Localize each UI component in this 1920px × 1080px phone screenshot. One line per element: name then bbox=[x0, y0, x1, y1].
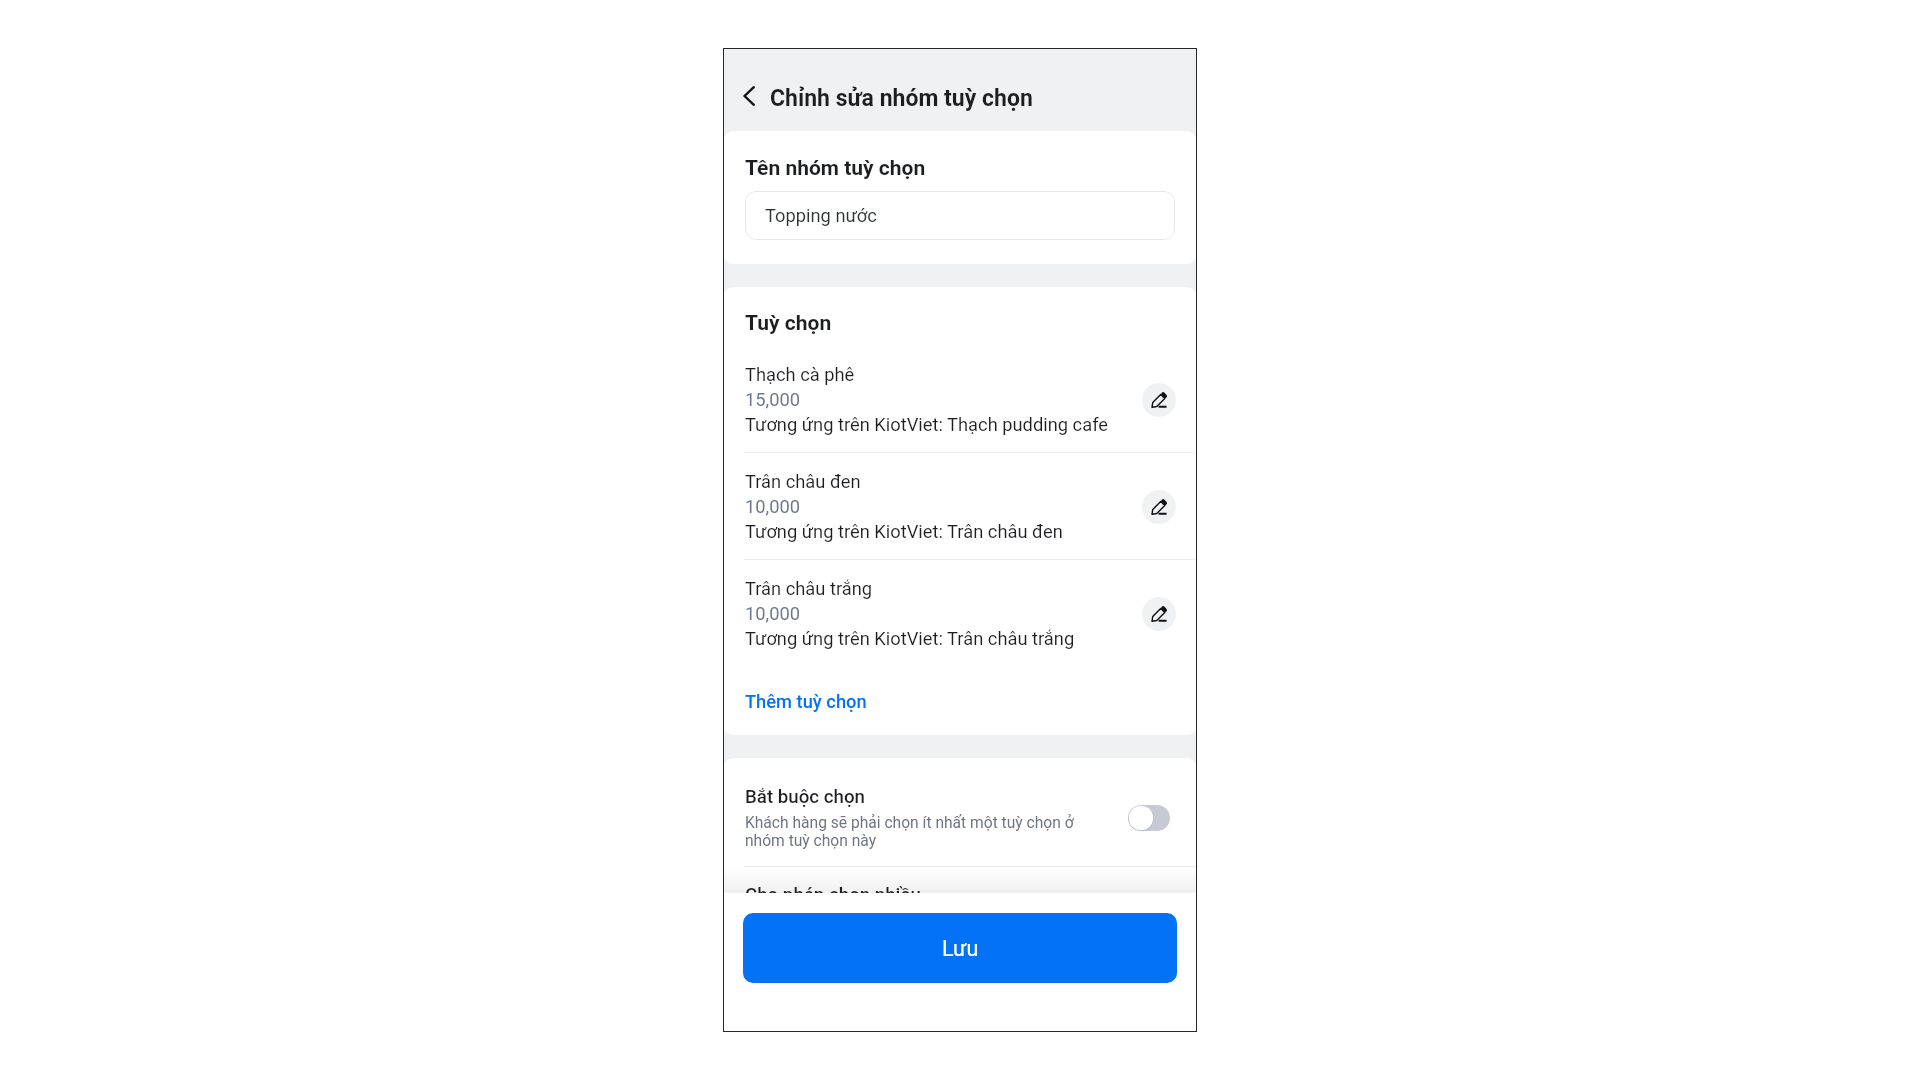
button[interactable]: Trân châu trắng 10,000 Tương ứng trên Ki… bbox=[723, 562, 1197, 668]
button[interactable]: Back bbox=[732, 79, 766, 113]
button[interactable]: Trân châu đen 10,000 Tương ứng trên Kiot… bbox=[723, 455, 1197, 561]
staticText: Lưu bbox=[942, 936, 979, 961]
button[interactable]: Chỉnh sửa tuỳ chọn bbox=[1142, 597, 1176, 631]
staticText: Trân châu trắng 10,000 Tương ứng trên Ki… bbox=[745, 578, 1075, 649]
staticText: Topping nước bbox=[765, 205, 877, 226]
staticText: Tuỳ chọn bbox=[745, 311, 832, 336]
staticText: Tên nhóm tuỳ chọn bbox=[745, 156, 926, 181]
button[interactable]: Cho phép chọn nhiều bbox=[723, 867, 1197, 1031]
button[interactable]: Thêm tuỳ chọn bbox=[745, 691, 867, 712]
staticText: Bắt buộc chọn bbox=[745, 786, 865, 808]
staticText: Trân châu đen 10,000 Tương ứng trên Kiot… bbox=[745, 471, 1063, 542]
button[interactable]: Topping nước bbox=[745, 191, 1175, 240]
button[interactable]: Lưu bbox=[743, 913, 1177, 983]
staticText: Cho phép chọn nhiều bbox=[745, 884, 921, 906]
staticText: Thạch cà phê 15,000 Tương ứng trên KiotV… bbox=[745, 364, 1108, 435]
staticText: Thêm tuỳ chọn bbox=[745, 691, 867, 712]
staticText: Chỉnh sửa nhóm tuỳ chọn bbox=[770, 85, 1033, 112]
button[interactable]: Chỉnh sửa tuỳ chọn bbox=[1142, 490, 1176, 524]
button[interactable]: Bắt buộc chọn bbox=[723, 758, 1197, 873]
staticText: Khách hàng sẽ phải chọn ít nhất một tuỳ … bbox=[745, 814, 1079, 850]
button[interactable]: Thạch cà phê 15,000 Tương ứng trên KiotV… bbox=[723, 348, 1197, 454]
button[interactable]: Chỉnh sửa tuỳ chọn bbox=[1142, 383, 1176, 417]
button[interactable]: Bắt buộc chọn bbox=[1128, 805, 1170, 831]
